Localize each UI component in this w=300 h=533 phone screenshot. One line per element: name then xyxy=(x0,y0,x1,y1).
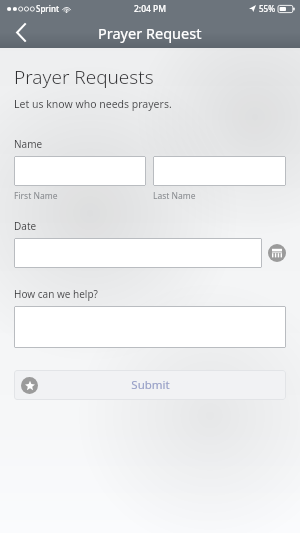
button[interactable] xyxy=(14,156,146,186)
staticText: Sprint xyxy=(36,3,59,14)
staticText: Prayer Request xyxy=(98,23,202,43)
button[interactable]: Back xyxy=(0,17,42,48)
staticText: Let us know who needs prayers. xyxy=(14,97,172,111)
staticText: Last Name xyxy=(153,190,196,202)
staticText: Submit xyxy=(131,377,170,393)
staticText: Name xyxy=(14,137,43,151)
staticText: 55% xyxy=(259,3,275,14)
button[interactable] xyxy=(14,238,262,268)
button[interactable]: Pick date xyxy=(268,244,286,262)
staticText: How can we help? xyxy=(14,287,98,301)
staticText: Date xyxy=(14,219,37,233)
button[interactable] xyxy=(14,306,286,348)
button[interactable]: Submit xyxy=(14,370,286,400)
staticText: First Name xyxy=(14,190,58,202)
button[interactable] xyxy=(153,156,286,186)
staticText: 2:04 PM xyxy=(134,3,167,15)
staticText: Prayer Requests xyxy=(14,64,154,90)
